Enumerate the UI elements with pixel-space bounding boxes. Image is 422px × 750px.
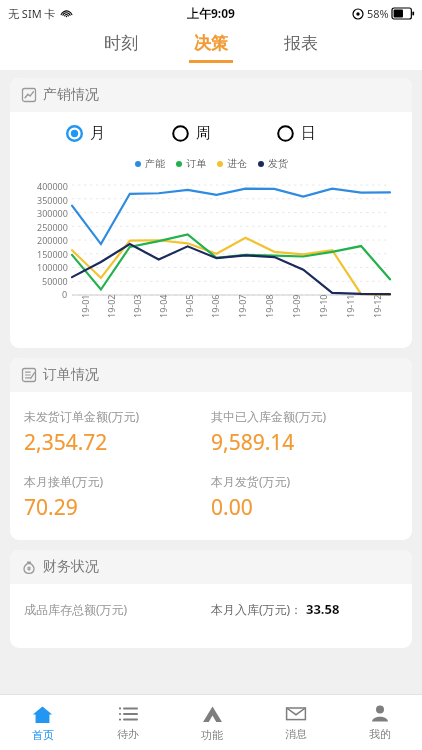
other: 功能 (202, 704, 223, 725)
button[interactable]: 未发货订单金额(万元) (24, 408, 211, 457)
button[interactable]: 消息 (254, 695, 338, 750)
staticText: 本月接单(万元) (24, 473, 104, 489)
other: 产销情况 (22, 88, 36, 102)
staticText: 成品库存总额(万元) (24, 601, 128, 617)
other: 消息 (286, 704, 306, 724)
staticText: 首页 (32, 728, 54, 742)
other: 财务状况 (22, 560, 36, 574)
staticText: 50000 (42, 275, 68, 287)
staticText: 250000 (37, 221, 68, 233)
staticText: 待办 (117, 727, 139, 741)
staticText: 19-07 (236, 294, 248, 318)
staticText: 350000 (37, 194, 68, 206)
staticText: 发货 (268, 157, 288, 170)
staticText: 19-12 (371, 294, 383, 318)
button[interactable]: 周 (172, 124, 277, 143)
other: 订单情况 (22, 368, 36, 382)
staticText: 上午9:09 (187, 5, 235, 21)
staticText: 70.29 (24, 493, 78, 522)
button[interactable]: 本月发货(万元) (211, 473, 398, 522)
staticText: 19-11 (344, 294, 356, 318)
staticText: 19-04 (157, 294, 169, 318)
staticText: 58% (367, 6, 389, 21)
staticText: 150000 (37, 248, 68, 260)
staticText: 报表 (284, 33, 318, 54)
button[interactable]: 报表 (273, 33, 329, 63)
button[interactable]: 时刻 (93, 33, 149, 63)
staticText: 订单 (186, 157, 206, 170)
button[interactable]: 决策 (183, 33, 239, 63)
staticText: 本月入库(万元)： (211, 601, 303, 617)
staticText: 无 SIM 卡 (8, 6, 56, 21)
staticText: 进仓 (227, 157, 247, 170)
staticText: 300000 (37, 207, 68, 219)
staticText: 财务状况 (43, 558, 99, 576)
other: 我的 (370, 704, 390, 724)
staticText: 0 (62, 288, 68, 300)
staticText: 100000 (37, 261, 68, 273)
staticText: 决策 (194, 33, 228, 54)
staticText: 19-10 (317, 294, 329, 318)
staticText: 19-08 (263, 294, 275, 318)
button[interactable]: 日 (277, 124, 382, 143)
staticText: 19-05 (183, 294, 195, 318)
staticText: 未发货订单金额(万元) (24, 408, 140, 424)
staticText: 产销情况 (43, 86, 99, 104)
staticText: 本月发货(万元) (211, 473, 291, 489)
button[interactable]: 待办 (85, 695, 170, 750)
button[interactable]: 本月接单(万元) (24, 473, 211, 522)
staticText: 订单情况 (43, 366, 99, 384)
button[interactable]: 月 (66, 124, 172, 143)
staticText: 19-03 (131, 294, 143, 318)
button[interactable]: 首页 (0, 695, 85, 750)
staticText: 时刻 (104, 33, 138, 54)
staticText: 19-01 (79, 294, 91, 318)
button[interactable]: 我的 (338, 695, 422, 750)
staticText: 400000 (37, 180, 68, 192)
button[interactable]: 其中已入库金额(万元) (211, 408, 398, 457)
other: 待办 (118, 704, 138, 724)
staticText: 19-09 (290, 294, 302, 318)
staticText: 我的 (369, 727, 391, 741)
staticText: 33.58 (306, 600, 340, 618)
staticText: 19-02 (105, 294, 117, 318)
button[interactable]: 功能 (170, 695, 254, 750)
staticText: 功能 (201, 728, 223, 742)
staticText: 2,354.72 (24, 428, 108, 457)
staticText: 0.00 (211, 493, 253, 522)
staticText: 消息 (285, 727, 307, 741)
staticText: 月 (90, 124, 105, 143)
staticText: 其中已入库金额(万元) (211, 408, 327, 424)
staticText: 200000 (37, 234, 68, 246)
staticText: 周 (196, 124, 211, 143)
staticText: 产能 (145, 157, 165, 170)
other: 首页 (32, 704, 53, 725)
staticText: 19-06 (209, 294, 221, 318)
staticText: 9,589.14 (211, 428, 295, 457)
staticText: 日 (301, 124, 316, 143)
